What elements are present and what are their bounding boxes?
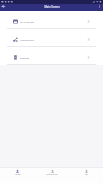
staticText: Transactions: [46, 173, 58, 176]
button[interactable]: More options: [96, 4, 103, 11]
staticText: Transactions: [20, 38, 35, 41]
staticText: Home: [15, 173, 21, 176]
staticText: My Accounts: [20, 20, 35, 23]
button[interactable]: Navigate up: [0, 4, 7, 11]
button[interactable]: Home: [0, 168, 35, 183]
staticText: Me: [85, 173, 88, 176]
staticText: Main Screen: [44, 5, 60, 9]
button[interactable]: Transactions: [35, 168, 69, 183]
button[interactable]: My Accounts: [0, 11, 103, 29]
staticText: Settings: [20, 56, 30, 59]
button[interactable]: Settings: [0, 47, 103, 65]
button[interactable]: Me: [69, 168, 103, 183]
button[interactable]: Transactions: [0, 29, 103, 47]
